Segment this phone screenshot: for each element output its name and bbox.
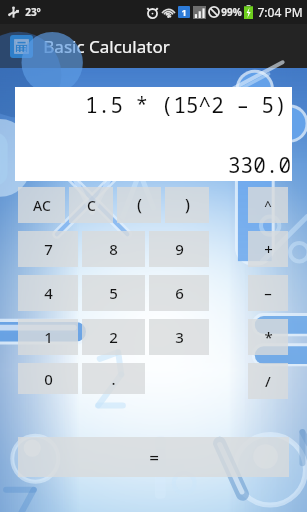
staticText: AC [33, 196, 51, 215]
staticText: ( [137, 194, 142, 216]
staticText: 3 [175, 327, 184, 347]
button[interactable]: C [69, 187, 113, 223]
button[interactable]: AC [18, 187, 65, 223]
button[interactable]: 2 [82, 319, 145, 355]
staticText: 1 [44, 327, 53, 347]
button[interactable]: 6 [149, 275, 209, 311]
staticText: 4 [44, 283, 53, 303]
staticText: – [264, 283, 272, 303]
button[interactable]: + [248, 231, 288, 267]
button[interactable]: 4 [18, 275, 78, 311]
staticText: * [264, 327, 273, 347]
staticText: = [149, 446, 159, 469]
staticText: 7 [44, 239, 53, 259]
staticText: 23° [25, 5, 41, 19]
button[interactable]: 7 [18, 231, 78, 267]
staticText: 5 [109, 283, 118, 303]
button[interactable]: . [82, 363, 145, 394]
button[interactable]: Basic Calculator icon [10, 35, 33, 58]
staticText: 9 [175, 239, 184, 259]
staticText: Basic Calculator [43, 35, 170, 58]
staticText: 6 [175, 283, 184, 303]
button[interactable]: / [248, 363, 288, 399]
staticText: 0 [44, 369, 53, 389]
button[interactable]: = [18, 437, 289, 477]
staticText: / [265, 371, 271, 391]
button[interactable]: 5 [82, 275, 145, 311]
button[interactable]: 9 [149, 231, 209, 267]
staticText: 330.0 [228, 151, 291, 180]
button[interactable]: 0 [18, 363, 78, 394]
button[interactable]: ) [165, 187, 209, 223]
button[interactable]: 8 [82, 231, 145, 267]
button[interactable]: ^ [248, 187, 288, 223]
staticText: . [111, 369, 116, 389]
staticText: 99% [221, 5, 242, 19]
staticText: 1 [181, 6, 187, 18]
button[interactable]: * [248, 319, 288, 355]
staticText: + [264, 239, 273, 259]
button[interactable]: – [248, 275, 288, 311]
button[interactable]: 3 [149, 319, 209, 355]
staticText: 1.5 * (15^2 – 5) [85, 91, 287, 120]
staticText: ^ [264, 196, 272, 214]
staticText: 2 [109, 327, 118, 347]
button[interactable]: 1 [18, 319, 78, 355]
staticText: 7:04 PM [257, 4, 303, 20]
staticText: ) [185, 194, 190, 216]
button[interactable]: 1.5 * (15^2 – 5) [15, 87, 292, 181]
staticText: 8 [109, 239, 118, 259]
staticText: C [87, 196, 96, 215]
button[interactable]: ( [117, 187, 161, 223]
